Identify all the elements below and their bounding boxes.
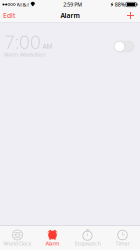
button[interactable]: 7:00: [0, 22, 140, 61]
staticText: AM: [42, 42, 52, 51]
staticText: AT&T: [16, 1, 29, 8]
staticText: Alarm, Weekdays: [4, 51, 46, 58]
staticText: 2:59 PM: [63, 1, 82, 8]
staticText: Edit: [3, 11, 15, 20]
button[interactable]: Edit: [0, 9, 18, 22]
staticText: Alarm: [45, 240, 59, 247]
staticText: World Clock: [3, 240, 31, 247]
button[interactable]: Alarm: [35, 226, 70, 249]
button[interactable]: Add alarm: [123, 9, 140, 22]
button[interactable]: World Clock: [0, 226, 35, 249]
staticText: 7:00: [4, 29, 41, 54]
staticText: 88%: [115, 1, 125, 8]
button[interactable]: Stopwatch: [70, 226, 105, 249]
button[interactable]: Timer: [105, 226, 140, 249]
staticText: Timer: [115, 240, 129, 247]
staticText: Alarm: [60, 11, 79, 20]
staticText: Stopwatch: [74, 240, 100, 247]
